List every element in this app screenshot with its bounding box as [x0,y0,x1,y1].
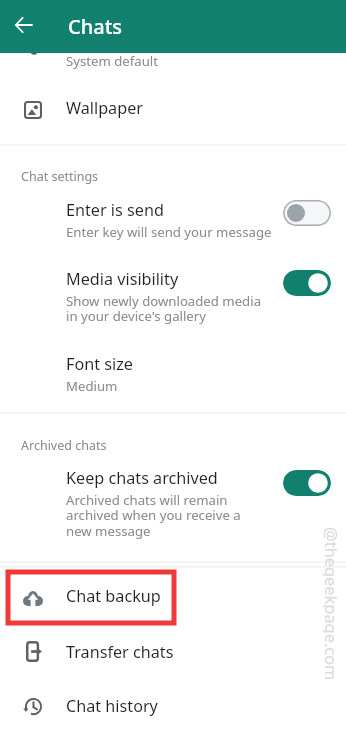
button[interactable]: On [283,470,331,496]
button[interactable]: Media visibility [0,262,346,328]
staticText: @thegeekpage.com [323,527,343,681]
button[interactable]: Font size [0,346,346,396]
staticText: Enter key will send your message [66,223,272,241]
staticText: Enter is send [66,199,164,221]
staticText: Chat backup [66,585,161,607]
staticText: System default [66,52,159,70]
staticText: Transfer chats [66,641,174,663]
staticText: Keep chats archived [66,467,218,489]
button[interactable]: Off [283,200,331,226]
button[interactable]: Wallpaper [0,80,346,134]
staticText: Archived chats [21,437,107,454]
button[interactable]: Transfer chats [0,623,346,677]
staticText: Medium [66,377,118,395]
staticText: Media visibility [66,268,179,290]
staticText: Wallpaper [66,97,143,119]
button[interactable]: Chat backup [0,567,346,621]
button[interactable]: Back [3,5,43,45]
staticText: Show newly downloaded media in your devi… [66,292,262,325]
staticText: Archived chats will remain archived when… [66,491,241,540]
staticText: Chats [68,13,123,40]
button[interactable]: Chat history [0,677,346,731]
button[interactable]: Enter is send [0,192,346,244]
staticText: Chat settings [21,168,99,185]
staticText: Font size [66,353,133,375]
button[interactable]: Keep chats archived [0,463,346,541]
staticText: Chat history [66,695,158,717]
button[interactable]: On [283,270,331,296]
